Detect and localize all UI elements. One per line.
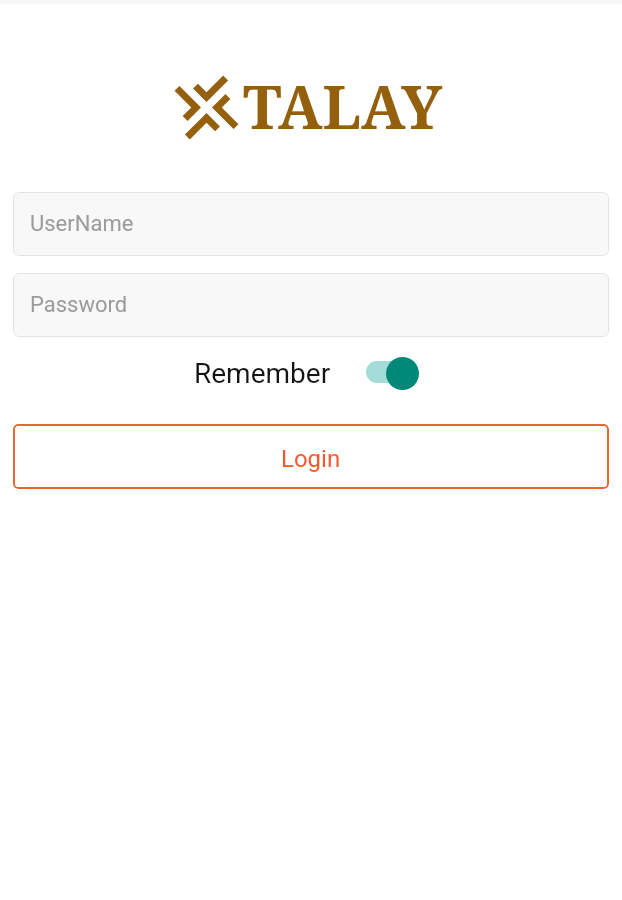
button[interactable]: Password	[13, 273, 609, 337]
staticText: Login	[281, 445, 341, 473]
staticText: TALAY	[243, 66, 443, 146]
button[interactable]: Login	[13, 424, 609, 489]
button[interactable]: Remember me toggle	[366, 356, 420, 390]
staticText: UserName	[30, 211, 134, 237]
button[interactable]: UserName	[13, 192, 609, 256]
staticText: Password	[30, 292, 128, 318]
staticText: Remember	[194, 357, 331, 390]
button[interactable]: Remember	[194, 353, 420, 393]
